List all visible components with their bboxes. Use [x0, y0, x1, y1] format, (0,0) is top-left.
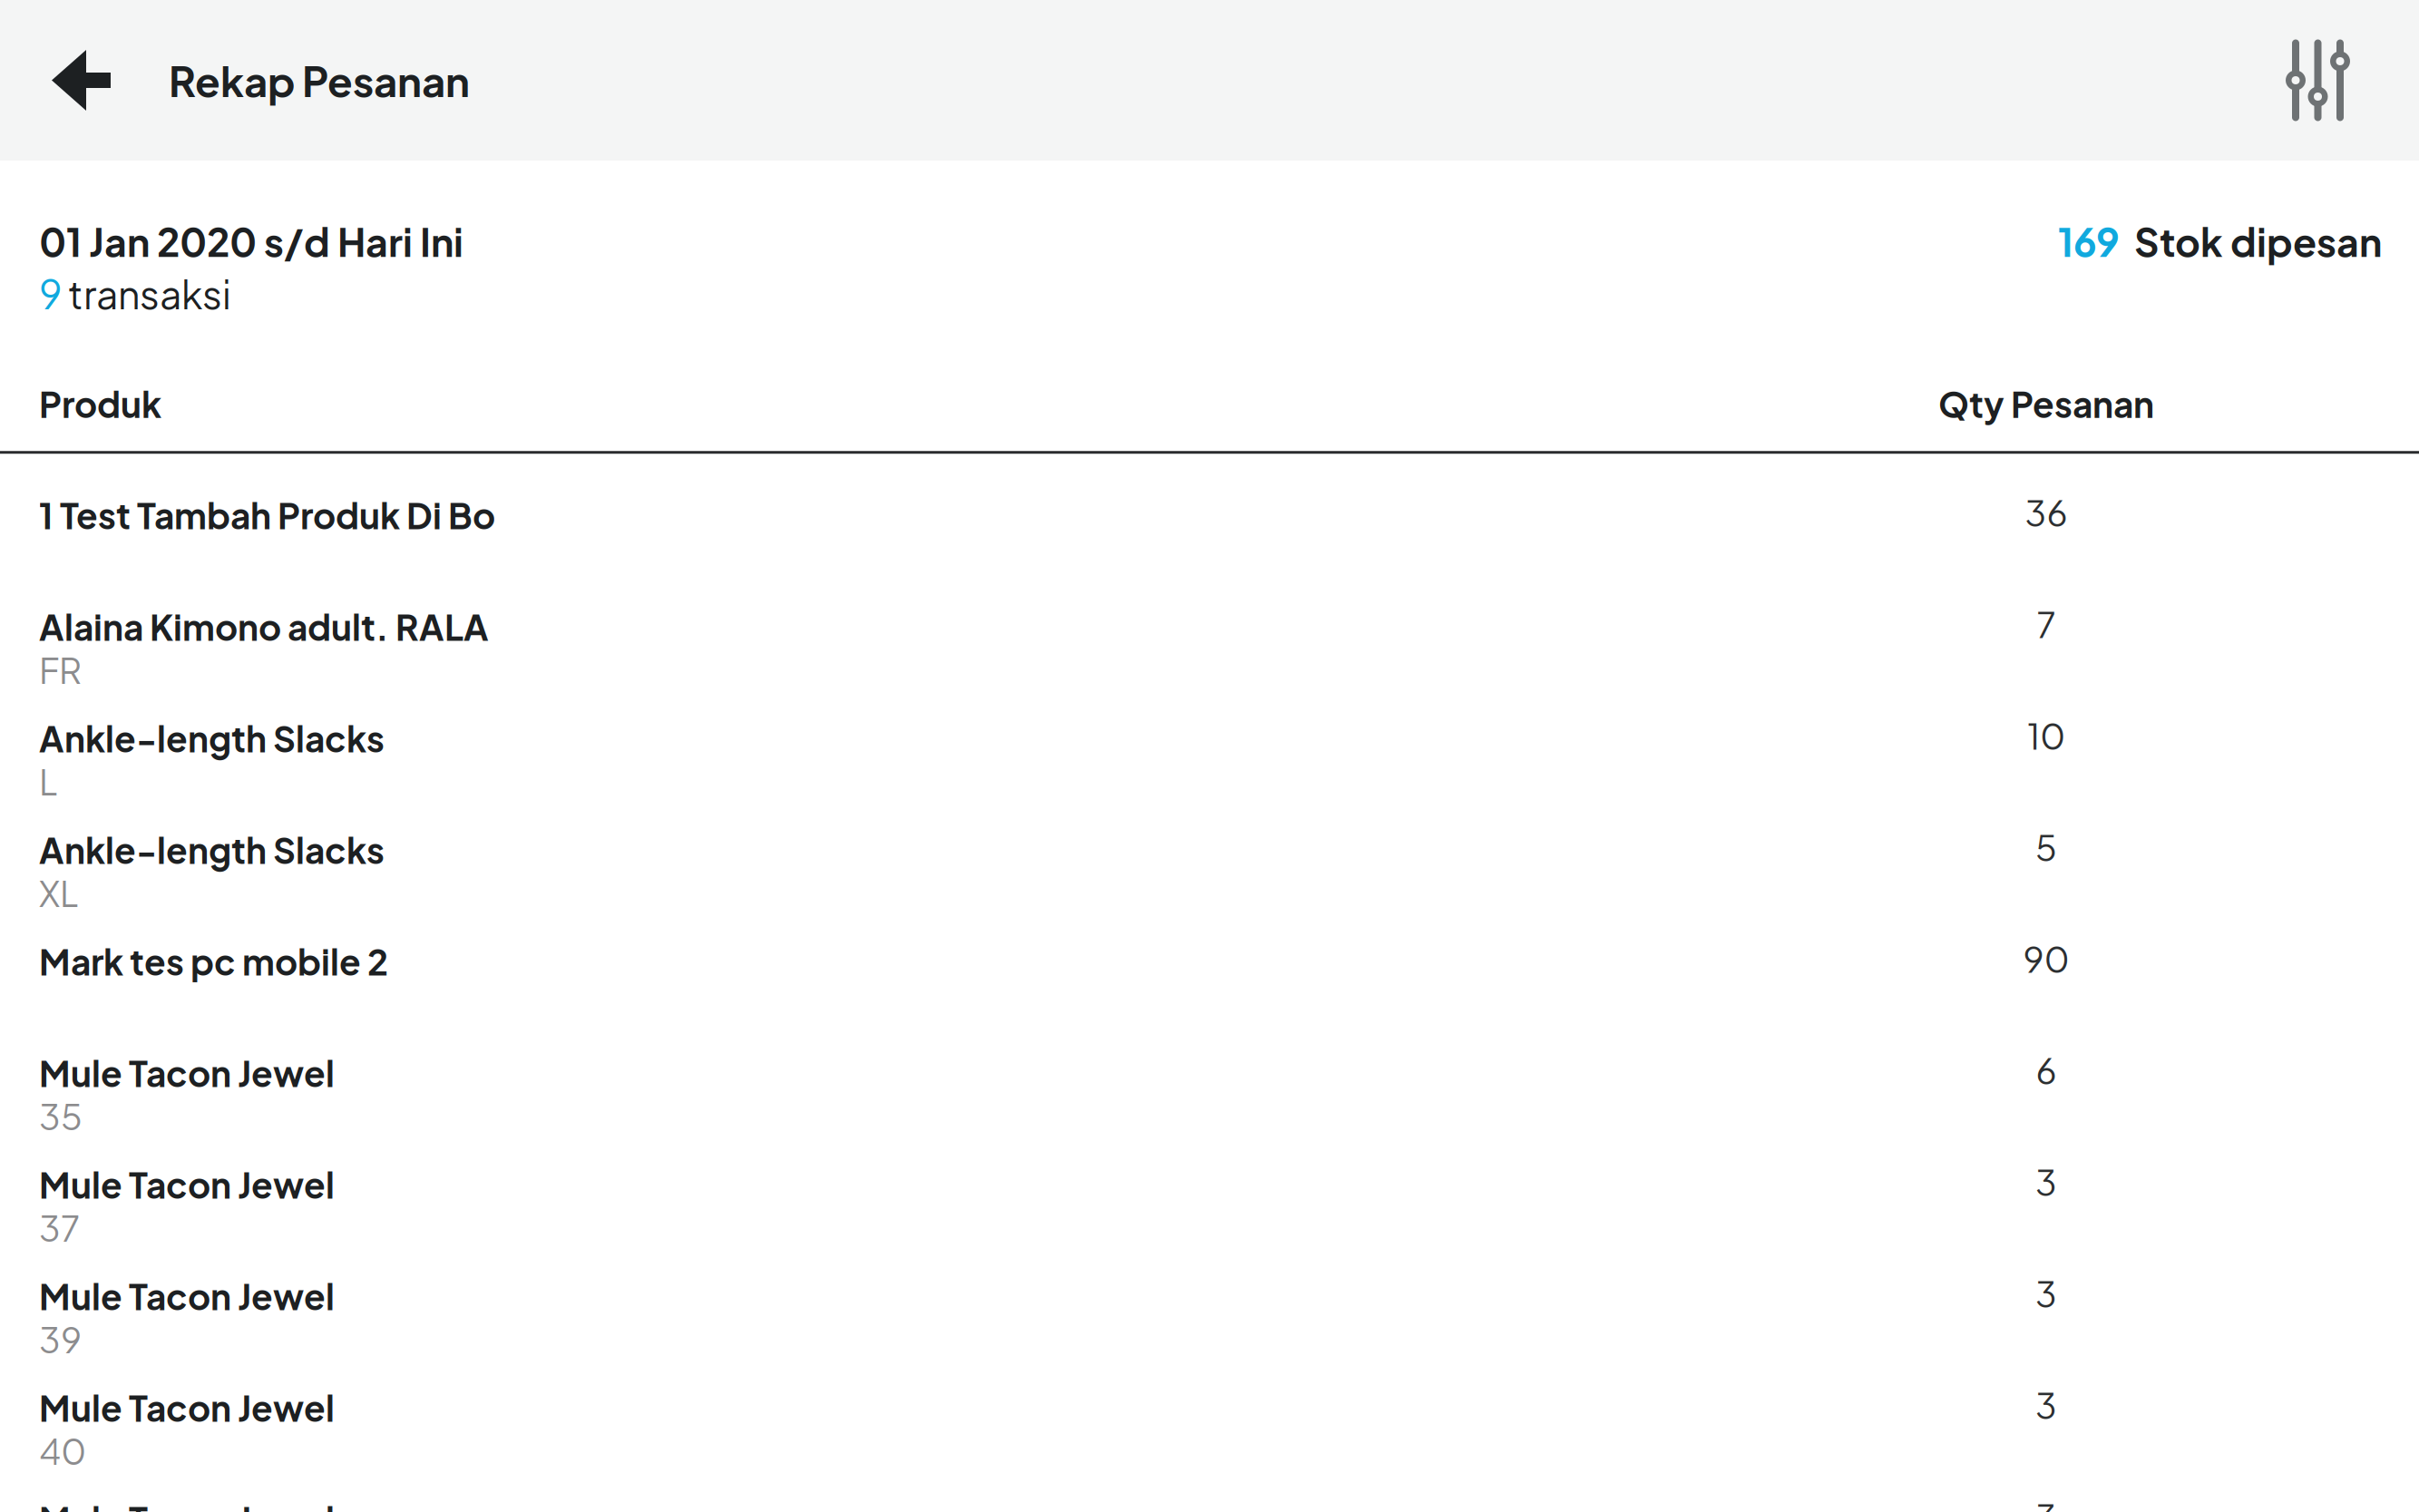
staticText: 1 Test Tambah Produk Di Bo — [39, 493, 495, 537]
staticText: Mark tes pc mobile 2 — [39, 939, 388, 983]
staticText: 3 — [2035, 1382, 2057, 1427]
staticText: 01 Jan 2020 s/d Hari Ini — [39, 217, 463, 266]
staticText: 3 — [2035, 1159, 2057, 1204]
staticText: Mule Tacon Jewel — [39, 1051, 335, 1095]
staticText: Ankle-length Slacks — [39, 716, 385, 760]
staticText: 39 — [39, 1317, 82, 1361]
staticText: Ankle-length Slacks — [39, 827, 385, 872]
button[interactable]: Mule Tacon Jewel — [0, 1162, 2419, 1274]
button[interactable]: Mule Tacon Jewel — [0, 1385, 2419, 1497]
button[interactable]: 1 Test Tambah Produk Di Bo — [0, 493, 2419, 604]
button[interactable]: Alaina Kimono adult. RALA — [0, 604, 2419, 716]
staticText: Mule Tacon Jewel — [39, 1274, 335, 1318]
staticText: 40 — [39, 1429, 86, 1473]
staticText: XL — [39, 871, 79, 915]
staticText: 37 — [39, 1205, 80, 1250]
staticText: Mule Tacon Jewel — [39, 1385, 335, 1429]
staticText: 9 — [39, 269, 62, 318]
staticText: 6 — [2036, 1048, 2057, 1092]
button[interactable]: Mule Tacon Jewel — [0, 1274, 2419, 1385]
staticText: 3 — [2035, 1494, 2057, 1512]
button[interactable]: Ankle-length Slacks — [0, 827, 2419, 939]
button[interactable]: Mark tes pc mobile 2 — [0, 939, 2419, 1051]
staticText: Alaina Kimono adult. RALA — [39, 604, 489, 648]
staticText: Mule Tacon Jewel — [39, 1497, 335, 1512]
staticText: Rekap Pesanan — [169, 54, 470, 106]
button[interactable]: Filter — [2249, 0, 2419, 161]
staticText: transaksi — [62, 269, 231, 318]
button[interactable]: Back — [0, 0, 169, 161]
staticText: 169 — [2058, 217, 2120, 266]
staticText: 36 — [2025, 490, 2068, 534]
staticText: 10 — [2027, 713, 2065, 757]
staticText: 5 — [2035, 825, 2057, 869]
staticText: Mule Tacon Jewel — [39, 1162, 335, 1206]
staticText: Qty Pesanan — [1938, 381, 2154, 426]
staticText: FR — [39, 648, 82, 692]
staticText: 3 — [2035, 1271, 2057, 1315]
staticText: 90 — [2023, 936, 2069, 980]
staticText: Stok dipesan — [2120, 217, 2382, 266]
staticText: 35 — [39, 1094, 83, 1138]
staticText: L — [39, 759, 58, 803]
staticText: 7 — [2037, 602, 2056, 646]
button[interactable]: Mule Tacon Jewel — [0, 1051, 2419, 1162]
button[interactable]: Ankle-length Slacks — [0, 716, 2419, 827]
button[interactable]: Mule Tacon Jewel — [0, 1497, 2419, 1512]
staticText: Produk — [39, 381, 161, 426]
